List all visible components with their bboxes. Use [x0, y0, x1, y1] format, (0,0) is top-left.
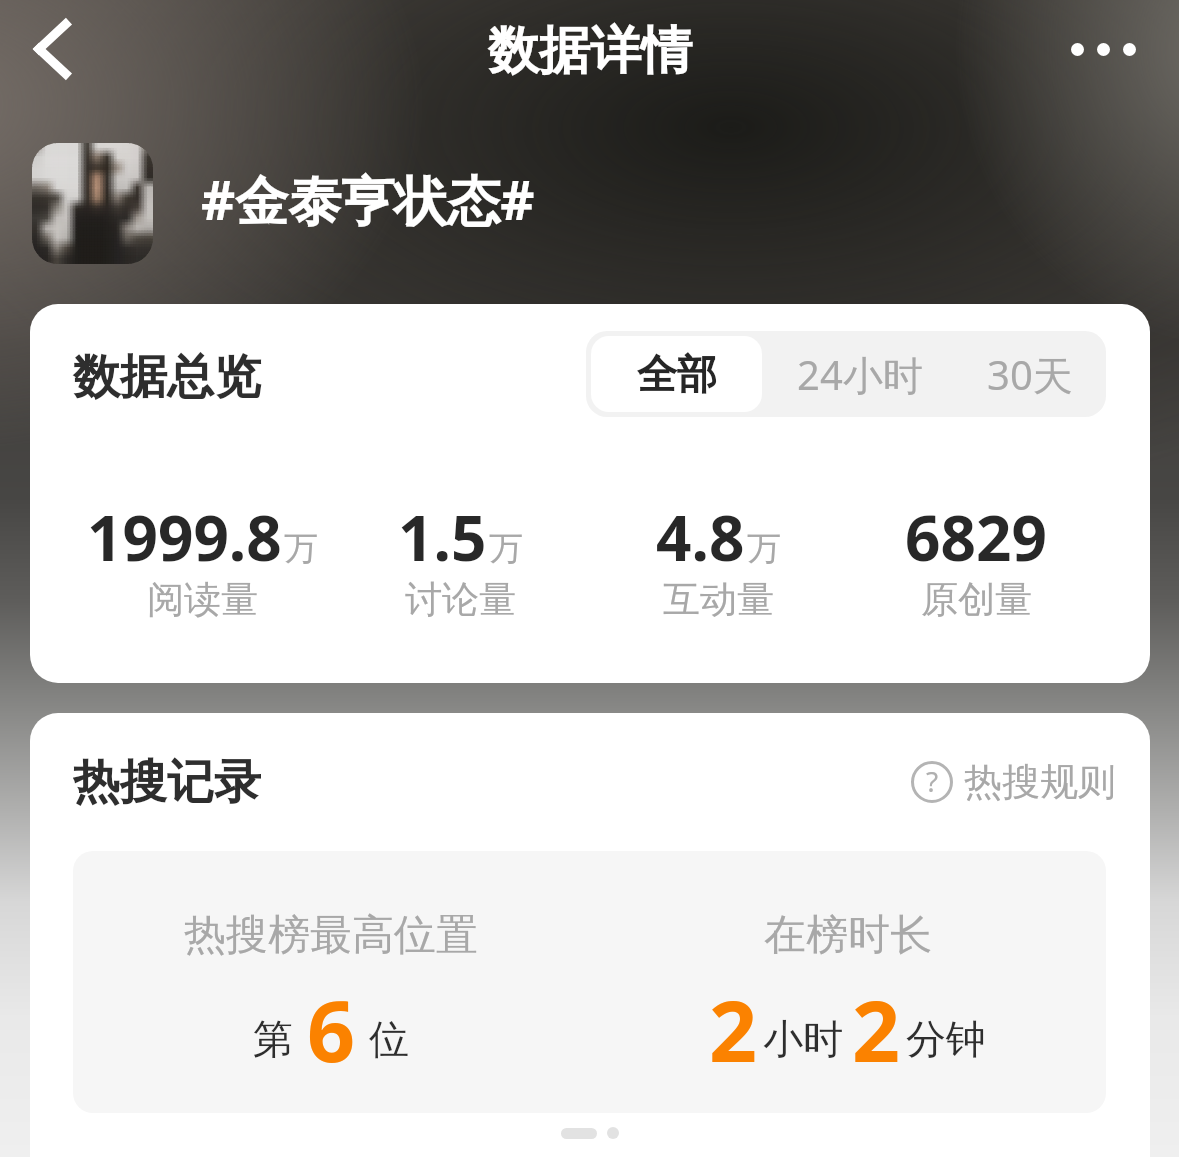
staticText: 位 — [369, 1014, 409, 1064]
staticText: 6 — [307, 972, 356, 1086]
staticText: 热搜规则 — [964, 758, 1116, 806]
button[interactable]: 24小时 — [767, 331, 953, 417]
button[interactable]: 4.8 — [589, 495, 847, 626]
button[interactable]: 30天 — [953, 331, 1106, 417]
button[interactable]: 1999.8 — [73, 495, 331, 626]
staticText: 6829 — [905, 495, 1047, 579]
staticText: 24小时 — [797, 347, 923, 402]
staticText: 小时 — [763, 1014, 843, 1064]
staticText: 第 — [253, 1014, 293, 1064]
staticText: 数据总览 — [73, 348, 261, 407]
staticText: #金泰亨状态# — [201, 163, 535, 235]
staticText: 阅读量 — [147, 576, 258, 623]
button[interactable]: Back — [6, 3, 98, 95]
staticText: 全部 — [637, 349, 717, 399]
staticText: 分钟 — [906, 1014, 986, 1064]
button[interactable]: 1.5 — [331, 495, 589, 626]
staticText: 原创量 — [921, 576, 1032, 623]
button[interactable]: 6829 — [847, 495, 1105, 626]
staticText: 讨论量 — [405, 576, 516, 623]
staticText: 1999.8 — [87, 495, 282, 579]
staticText: 2 — [852, 972, 901, 1086]
staticText: 数据详情 — [488, 19, 692, 83]
staticText: 1.5 — [398, 495, 487, 579]
staticText: 4.8 — [656, 495, 745, 579]
staticText: 30天 — [987, 347, 1073, 402]
staticText: 万 — [747, 527, 781, 570]
staticText: ? — [926, 762, 939, 800]
staticText: 互动量 — [663, 576, 774, 623]
staticText: 万 — [489, 527, 523, 570]
button[interactable]: Topic avatar — [32, 143, 153, 264]
button[interactable]: More options — [1053, 9, 1153, 89]
button[interactable]: ? — [911, 758, 1116, 806]
button[interactable]: 全部 — [591, 336, 762, 412]
staticText: 热搜榜最高位置 — [184, 909, 478, 962]
staticText: 2 — [709, 972, 758, 1086]
staticText: 万 — [284, 527, 318, 570]
staticText: 热搜记录 — [73, 753, 261, 811]
staticText: 在榜时长 — [764, 909, 932, 962]
